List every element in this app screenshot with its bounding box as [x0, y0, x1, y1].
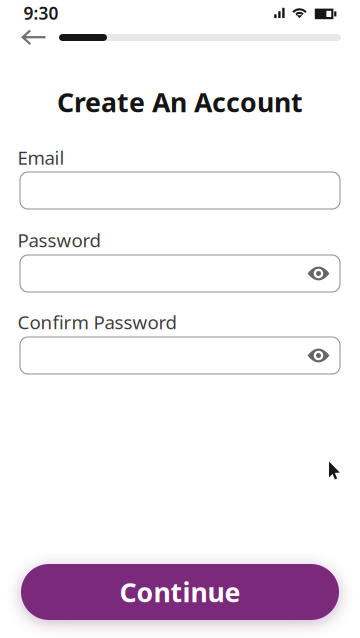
staticText: 9:30 [23, 1, 58, 24]
staticText: Email [17, 145, 64, 170]
staticText: Confirm Password [17, 309, 176, 334]
button[interactable] [17, 25, 50, 49]
button[interactable]: Continue [21, 564, 339, 620]
staticText: Continue [119, 574, 240, 610]
staticText: Create An Account [57, 84, 303, 120]
button[interactable] [20, 255, 340, 292]
button[interactable] [20, 337, 340, 374]
button[interactable] [303, 261, 334, 285]
button[interactable] [20, 172, 340, 209]
staticText: Password [17, 227, 100, 252]
button[interactable] [303, 343, 334, 367]
